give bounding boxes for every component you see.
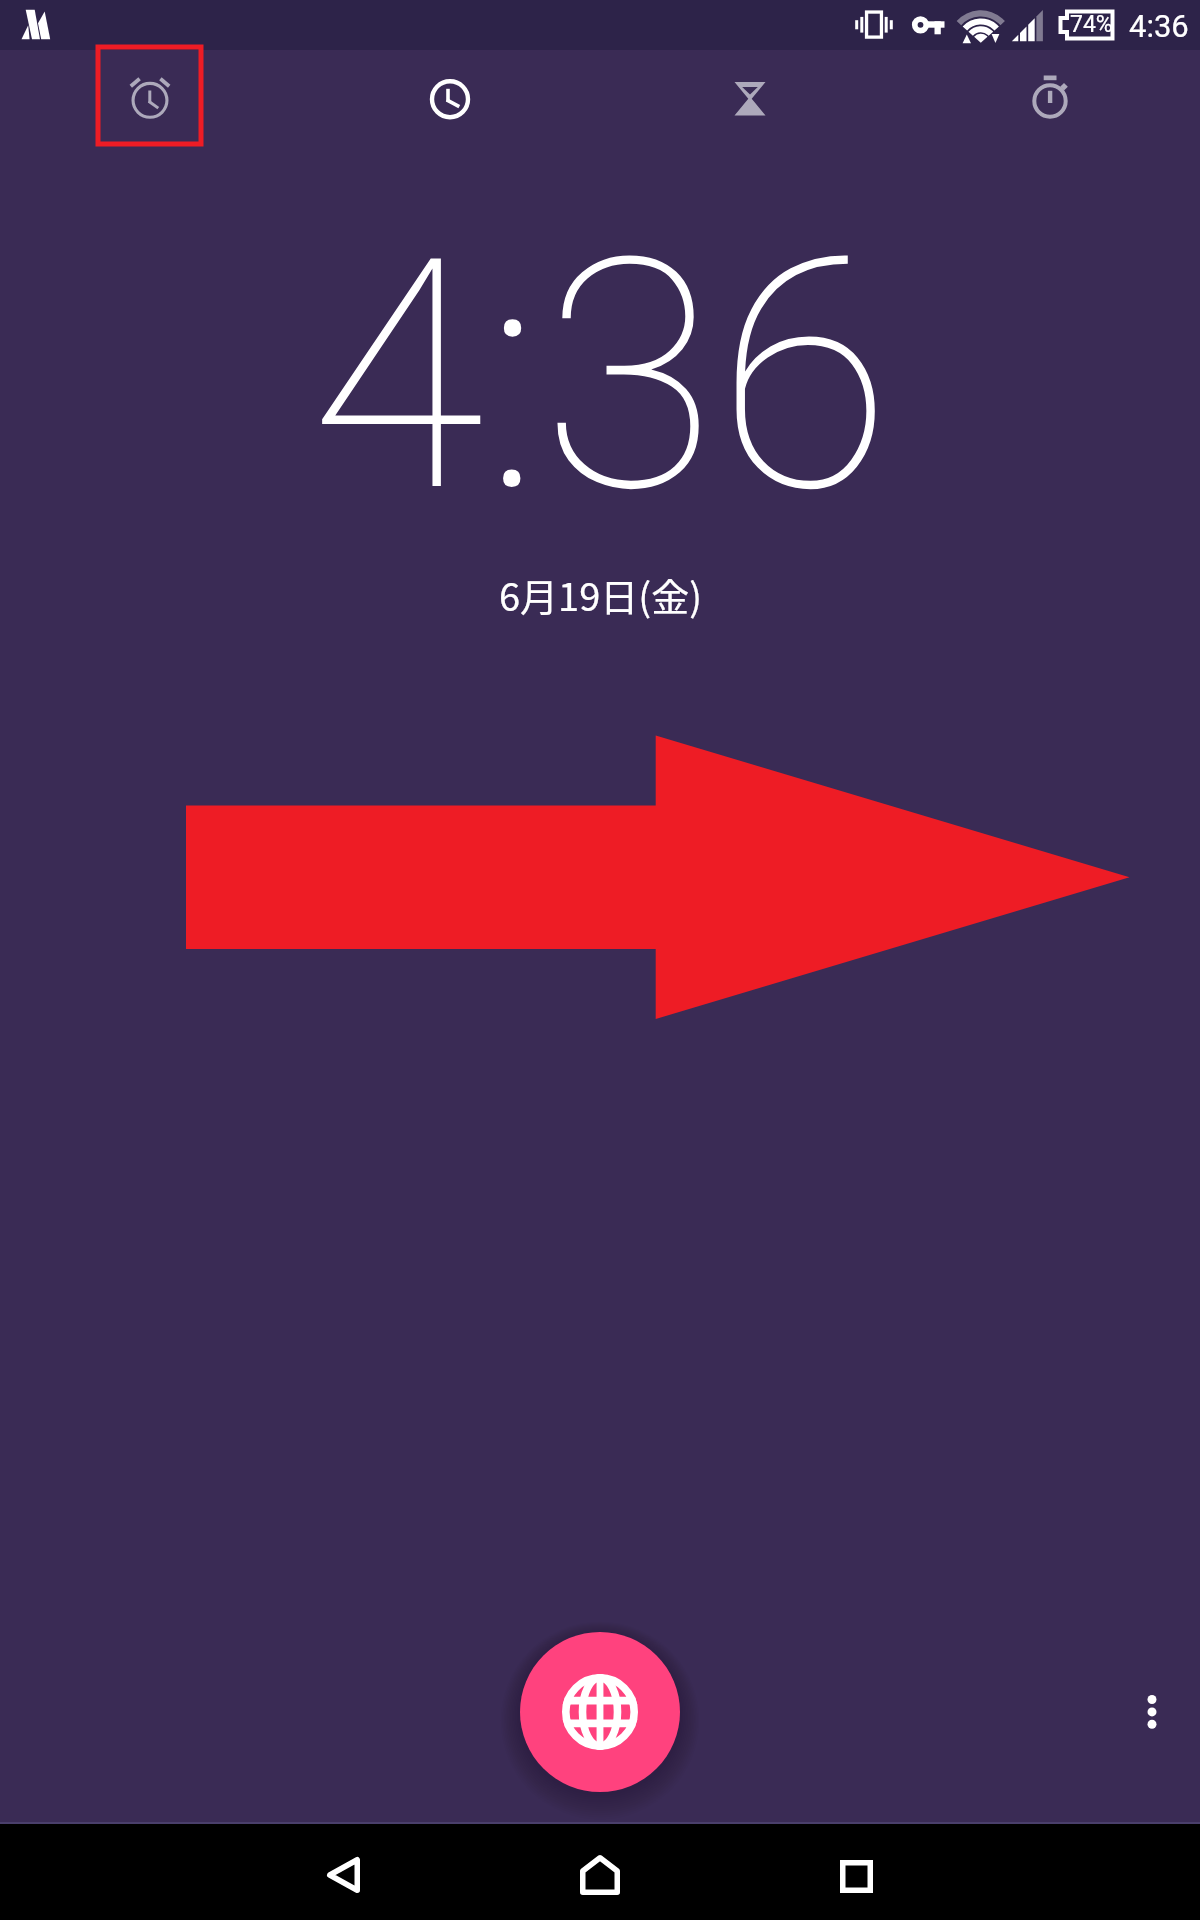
button[interactable]: Clock (300, 50, 600, 150)
button[interactable]: World clock (520, 1632, 680, 1792)
button[interactable]: Stopwatch (900, 50, 1200, 150)
button[interactable]: More options (1122, 1682, 1182, 1742)
button[interactable]: Timer (600, 50, 900, 150)
button[interactable]: Back (283, 1835, 403, 1915)
button[interactable]: Home (540, 1835, 660, 1915)
button[interactable]: Recent apps (796, 1836, 916, 1916)
staticText: 4:36 (1129, 8, 1189, 44)
staticText: 6月19日(金) (499, 567, 702, 622)
button[interactable]: Alarm (0, 50, 300, 150)
staticText: 74% (1070, 11, 1113, 38)
staticText: 4:36 (309, 189, 892, 564)
